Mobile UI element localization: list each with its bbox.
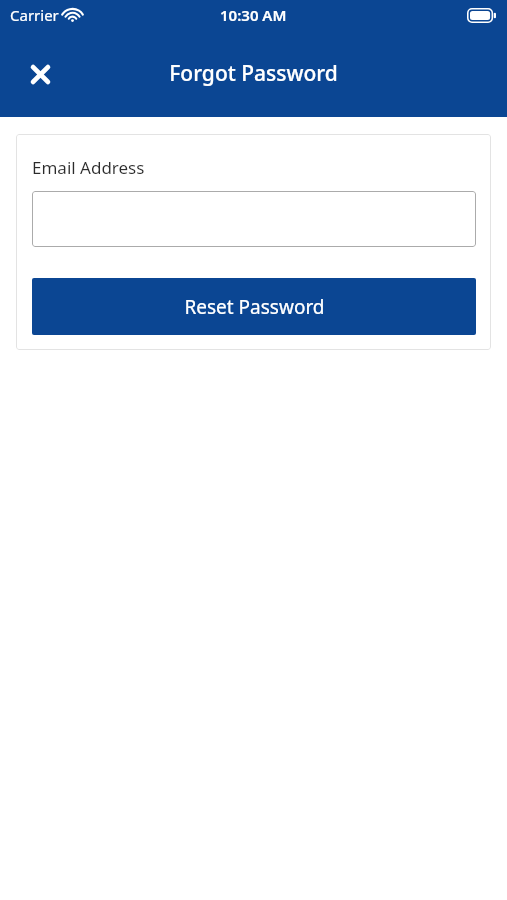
button[interactable]: Close xyxy=(14,48,66,100)
button[interactable]: Reset Password xyxy=(32,278,476,335)
staticText: Email Address xyxy=(32,156,145,179)
staticText: Forgot Password xyxy=(169,59,338,88)
button[interactable] xyxy=(32,191,476,247)
staticText: Carrier xyxy=(10,5,59,25)
staticText: Reset Password xyxy=(184,294,325,320)
staticText: 10:30 AM xyxy=(220,5,287,25)
